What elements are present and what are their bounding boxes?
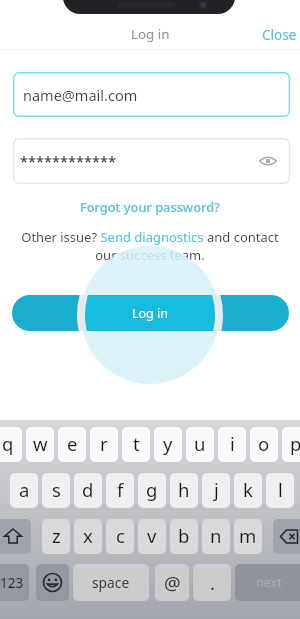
staticText: n xyxy=(210,523,222,548)
button[interactable]: n xyxy=(202,519,230,554)
staticText: k xyxy=(243,477,253,502)
button[interactable]: r xyxy=(90,427,118,462)
staticText: a xyxy=(19,477,30,502)
button[interactable]: name@mail.com xyxy=(13,72,290,117)
staticText: c xyxy=(116,523,125,548)
button[interactable]: q xyxy=(0,427,22,462)
staticText: o xyxy=(258,431,270,456)
staticText: g xyxy=(146,477,158,502)
button[interactable]: i xyxy=(218,427,246,462)
button[interactable]: . xyxy=(193,564,231,601)
button[interactable]: u xyxy=(186,427,214,462)
button[interactable]: j xyxy=(202,473,230,508)
staticText: x xyxy=(83,523,93,548)
button[interactable]: Close xyxy=(253,20,300,48)
button[interactable]: y xyxy=(154,427,182,462)
button[interactable]: w xyxy=(26,427,54,462)
staticText: l xyxy=(278,477,283,502)
staticText: Log in xyxy=(131,25,170,43)
button[interactable]: s xyxy=(42,473,70,508)
staticText: f xyxy=(117,477,124,502)
button[interactable]: @ xyxy=(155,564,189,601)
staticText: name@mail.com xyxy=(23,85,138,105)
button[interactable]: Shift xyxy=(0,519,31,554)
staticText: @ xyxy=(164,570,181,595)
button[interactable]: ************ xyxy=(13,138,290,184)
button[interactable]: space xyxy=(73,564,149,601)
button[interactable]: l xyxy=(266,473,294,508)
button[interactable]: next xyxy=(235,564,300,601)
button[interactable]: x xyxy=(74,519,102,554)
button[interactable]: c xyxy=(106,519,134,554)
staticText: j xyxy=(214,477,219,502)
button[interactable]: e xyxy=(58,427,86,462)
button[interactable]: Show password xyxy=(257,150,279,172)
button[interactable]: m xyxy=(234,519,262,554)
staticText: z xyxy=(52,523,61,548)
button[interactable]: o xyxy=(250,427,278,462)
staticText: w xyxy=(33,431,48,456)
staticText: next xyxy=(256,574,282,591)
button[interactable]: h xyxy=(170,473,198,508)
button[interactable]: Forgot your password? xyxy=(0,197,300,215)
staticText: s xyxy=(52,477,61,502)
staticText: h xyxy=(178,477,190,502)
staticText: ************ xyxy=(20,151,116,171)
staticText: Log in xyxy=(132,305,169,322)
staticText: 123 xyxy=(0,574,24,592)
button[interactable]: b xyxy=(170,519,198,554)
button[interactable]: Backspace xyxy=(273,519,300,554)
button[interactable]: v xyxy=(138,519,166,554)
staticText: Close xyxy=(262,25,297,44)
staticText: e xyxy=(67,431,78,456)
staticText: t xyxy=(133,431,140,456)
staticText: d xyxy=(82,477,94,502)
staticText: u xyxy=(194,431,206,456)
staticText: Other issue? Send diagnostics and contac… xyxy=(15,228,285,264)
staticText: v xyxy=(147,523,157,548)
button[interactable]: Numbers xyxy=(0,564,29,601)
button[interactable]: g xyxy=(138,473,166,508)
button[interactable]: z xyxy=(42,519,70,554)
staticText: y xyxy=(163,431,173,456)
staticText: m xyxy=(239,523,257,548)
button[interactable]: d xyxy=(74,473,102,508)
button[interactable]: t xyxy=(122,427,150,462)
button[interactable]: a xyxy=(10,473,38,508)
staticText: space xyxy=(92,573,130,592)
staticText: i xyxy=(230,431,235,456)
button[interactable]: p xyxy=(282,427,300,462)
staticText: p xyxy=(290,431,300,456)
staticText: . xyxy=(210,570,215,595)
staticText: b xyxy=(178,523,190,548)
staticText: r xyxy=(100,431,108,456)
button[interactable]: f xyxy=(106,473,134,508)
button[interactable]: k xyxy=(234,473,262,508)
button[interactable]: Emoji xyxy=(36,564,69,601)
button[interactable]: Log in xyxy=(12,295,289,331)
staticText: q xyxy=(2,431,14,456)
staticText: Forgot your password? xyxy=(80,198,220,215)
